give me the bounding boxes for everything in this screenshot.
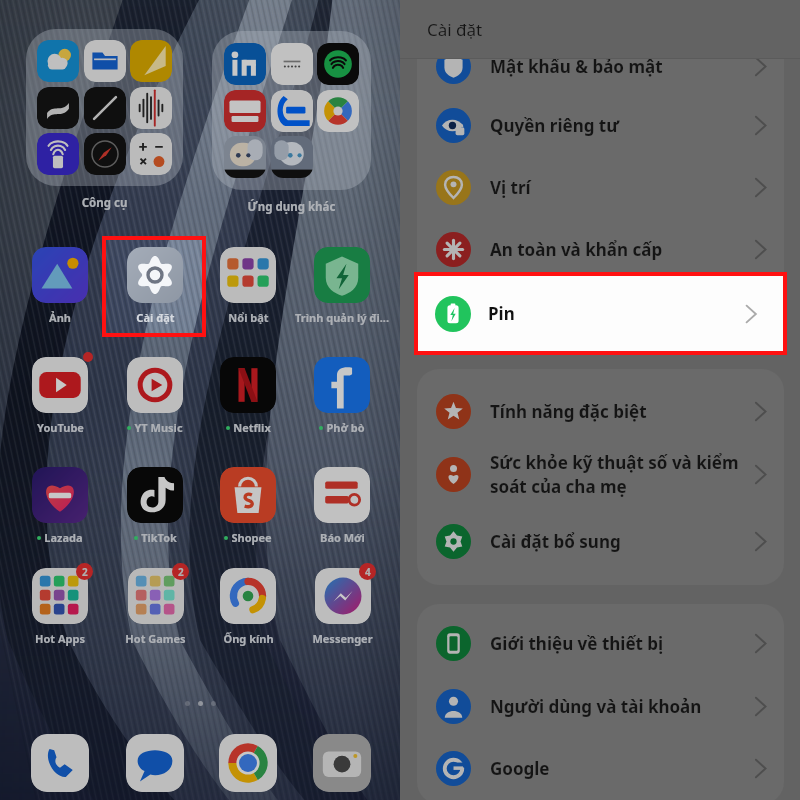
staticText: Shopee — [231, 530, 272, 545]
button[interactable]: Sức khỏe kỹ thuật số và kiểm soát của ch… — [400, 443, 800, 505]
button[interactable]: Chrome — [219, 734, 277, 792]
staticText: Hot Apps — [35, 631, 85, 646]
staticText: Pin — [488, 302, 740, 325]
button[interactable]: Shopee — [198, 467, 298, 545]
button[interactable] — [212, 31, 371, 190]
button[interactable]: Cài đặt bổ sung — [400, 510, 800, 572]
staticText: Nổi bật — [228, 310, 269, 325]
button[interactable]: Pin — [418, 276, 783, 351]
button[interactable]: Ống kính — [198, 568, 298, 646]
button[interactable]: YT Music — [105, 357, 205, 435]
staticText: Pin — [490, 300, 749, 323]
button[interactable]: Pin — [400, 280, 800, 342]
button[interactable]: Ảnh — [10, 247, 110, 325]
button[interactable]: Netflix — [198, 357, 298, 435]
staticText: Ảnh — [49, 310, 71, 325]
staticText: Cài đặt — [136, 310, 175, 325]
staticText: Cài đặt — [427, 18, 483, 41]
button[interactable]: YouTube — [10, 357, 110, 435]
button[interactable]: Quyền riêng tư — [400, 94, 800, 156]
button[interactable]: Cài đặt app highlighted — [102, 236, 206, 337]
staticText: Google — [490, 757, 749, 780]
button[interactable]: Phone — [31, 734, 89, 792]
button[interactable]: Google — [400, 737, 800, 799]
staticText: Mật khẩu & bảo mật — [490, 55, 749, 78]
staticText: Netflix — [233, 420, 271, 435]
staticText: Quyền riêng tư — [490, 114, 749, 137]
button[interactable]: Lazada — [10, 467, 110, 545]
staticText: TikTok — [141, 530, 177, 545]
button[interactable]: Giới thiệu về thiết bị — [400, 612, 800, 674]
staticText: Công cụ — [26, 195, 183, 211]
button[interactable]: An toàn và khẩn cấp — [400, 218, 800, 280]
button[interactable]: Báo Mới — [292, 467, 392, 545]
staticText: Giới thiệu về thiết bị — [490, 632, 749, 655]
staticText: Ống kính — [223, 631, 274, 646]
button[interactable]: Camera — [313, 734, 371, 792]
staticText: YT Music — [134, 420, 183, 435]
staticText: Trình quản lý đi... — [295, 310, 389, 325]
staticText: Phở bò — [326, 420, 365, 435]
staticText: Messenger — [312, 631, 373, 646]
staticText: 2 — [82, 565, 88, 579]
button[interactable] — [26, 29, 183, 186]
staticText: Báo Mới — [320, 530, 365, 545]
staticText: Vị trí — [490, 176, 749, 199]
staticText: Sức khỏe kỹ thuật số và kiểm soát của ch… — [490, 451, 749, 498]
staticText: 4 — [365, 565, 371, 579]
button[interactable]: Vị trí — [400, 156, 800, 218]
staticText: Cài đặt bổ sung — [490, 530, 749, 553]
button[interactable]: Mật khẩu & bảo mật — [400, 35, 800, 97]
staticText: Người dùng và tài khoản — [490, 695, 749, 718]
staticText: Ứng dụng khác — [212, 199, 371, 215]
button[interactable]: Trình quản lý đi... — [292, 247, 392, 325]
button[interactable]: Người dùng và tài khoản — [400, 675, 800, 737]
button[interactable]: TikTok — [105, 467, 205, 545]
button[interactable]: Cài đặt — [105, 247, 205, 325]
button[interactable]: Messages — [126, 734, 184, 792]
staticText: An toàn và khẩn cấp — [490, 238, 749, 261]
button[interactable]: 4 — [292, 568, 392, 646]
button[interactable]: 2 — [105, 568, 205, 646]
button[interactable]: 2 — [10, 568, 110, 646]
staticText: Tính năng đặc biệt — [490, 400, 749, 423]
staticText: Lazada — [44, 530, 83, 545]
button[interactable]: Nổi bật — [198, 247, 298, 325]
button[interactable]: Phở bò — [292, 357, 392, 435]
staticText: YouTube — [37, 420, 84, 435]
button[interactable]: Tính năng đặc biệt — [400, 380, 800, 442]
staticText: Hot Games — [125, 631, 186, 646]
staticText: 2 — [178, 565, 184, 579]
